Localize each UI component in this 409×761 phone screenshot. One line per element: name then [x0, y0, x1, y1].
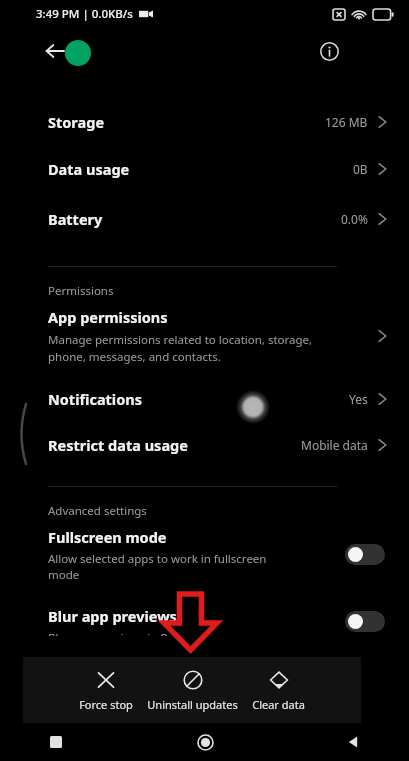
- staticText: 0B: [353, 161, 368, 177]
- button[interactable]: Fullscreen mode: [0, 523, 409, 586]
- button[interactable]: Force stop: [77, 657, 135, 712]
- button[interactable]: Blur app previews: [345, 611, 385, 632]
- button[interactable]: Battery: [0, 194, 409, 244]
- button[interactable]: Recents: [36, 723, 76, 761]
- button[interactable]: Fullscreen mode: [345, 544, 385, 565]
- staticText: Force stop: [79, 697, 133, 712]
- button[interactable]: Back: [40, 36, 70, 66]
- staticText: Data usage: [48, 159, 353, 179]
- staticText: Battery: [48, 209, 341, 229]
- staticText: Blur app previews: [48, 606, 177, 626]
- button[interactable]: Uninstall updates: [145, 657, 240, 712]
- staticText: Permissions: [48, 283, 114, 299]
- button[interactable]: App info: [313, 35, 345, 67]
- button[interactable]: Data usage: [0, 144, 409, 194]
- staticText: 126 MB: [325, 114, 368, 130]
- button[interactable]: Notifications: [0, 382, 409, 416]
- staticText: Advanced settings: [48, 503, 147, 519]
- staticText: Clear data: [252, 697, 305, 712]
- staticText: App permissions: [48, 307, 168, 327]
- button[interactable]: Clear data: [250, 657, 307, 712]
- staticText: Blur app previews in Recents: [48, 630, 203, 636]
- staticText: Yes: [349, 391, 368, 407]
- staticText: Notifications: [48, 389, 349, 409]
- staticText: 3:49 PM | 0.0KB/s: [36, 6, 133, 22]
- staticText: Mobile data: [301, 437, 368, 453]
- button[interactable]: Storage: [0, 100, 409, 144]
- button[interactable]: Restrict data usage: [0, 428, 409, 462]
- staticText: Fullscreen mode: [48, 527, 167, 547]
- staticText: Uninstall updates: [147, 697, 238, 712]
- staticText: Allow selected apps to work in fullscree…: [48, 551, 267, 582]
- button[interactable]: Blur app previews: [0, 602, 409, 640]
- staticText: Manage permissions related to location, …: [48, 332, 313, 364]
- button[interactable]: Back: [333, 723, 373, 761]
- staticText: Restrict data usage: [48, 435, 301, 455]
- button[interactable]: Home: [185, 723, 225, 761]
- staticText: Storage: [48, 112, 325, 132]
- button[interactable]: App permissions: [0, 303, 409, 368]
- staticText: 0.0%: [341, 211, 368, 227]
